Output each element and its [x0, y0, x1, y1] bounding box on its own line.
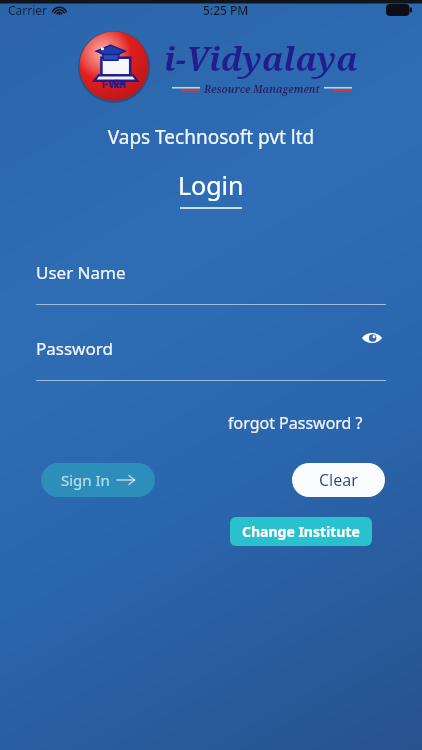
staticText: i-Vidyalaya [164, 36, 359, 81]
staticText: Resource Management [204, 82, 320, 96]
button[interactable]: Change Institute [230, 517, 372, 546]
button[interactable]: User Name [36, 259, 386, 305]
staticText: Login [178, 168, 244, 202]
staticText: Vaps Technosoft pvt ltd [0, 124, 422, 150]
staticText: 5:25 PM [203, 2, 249, 18]
button[interactable]: Show password [358, 325, 386, 351]
staticText: Password [36, 337, 113, 360]
staticText: Clear [319, 469, 358, 491]
button[interactable]: forgot Password ? [224, 409, 367, 437]
staticText: Sign In [61, 470, 110, 490]
staticText: Change Institute [242, 522, 360, 541]
button[interactable]: Sign In [41, 463, 155, 497]
staticText: Carrier [8, 2, 48, 18]
button[interactable]: Clear [292, 463, 385, 497]
button[interactable]: Password [36, 335, 386, 381]
staticText: User Name [36, 261, 126, 284]
staticText: forgot Password ? [228, 412, 363, 434]
